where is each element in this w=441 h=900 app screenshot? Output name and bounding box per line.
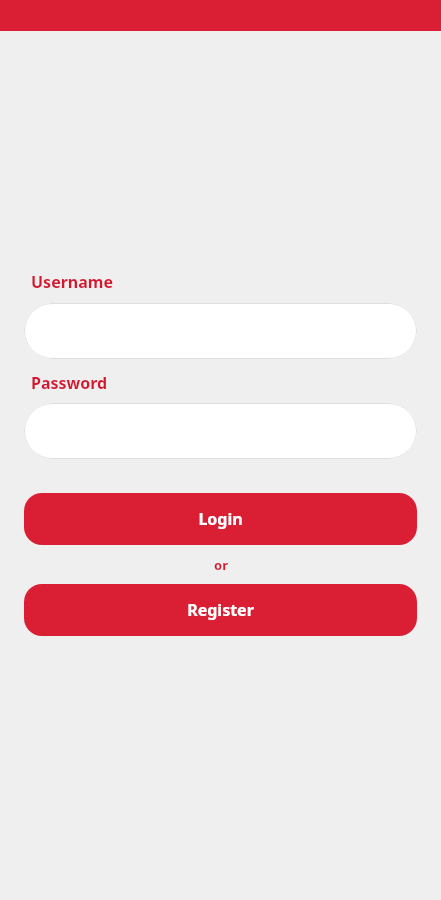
button[interactable]: Login bbox=[24, 493, 417, 545]
staticText: Password bbox=[31, 372, 108, 394]
button[interactable]: Password input bbox=[24, 403, 417, 459]
button[interactable]: Username input bbox=[24, 303, 417, 359]
staticText: Username bbox=[31, 271, 113, 293]
staticText: Register bbox=[187, 599, 254, 621]
button[interactable]: Register bbox=[24, 584, 417, 636]
staticText: Login bbox=[198, 508, 243, 530]
staticText: or bbox=[214, 556, 228, 574]
